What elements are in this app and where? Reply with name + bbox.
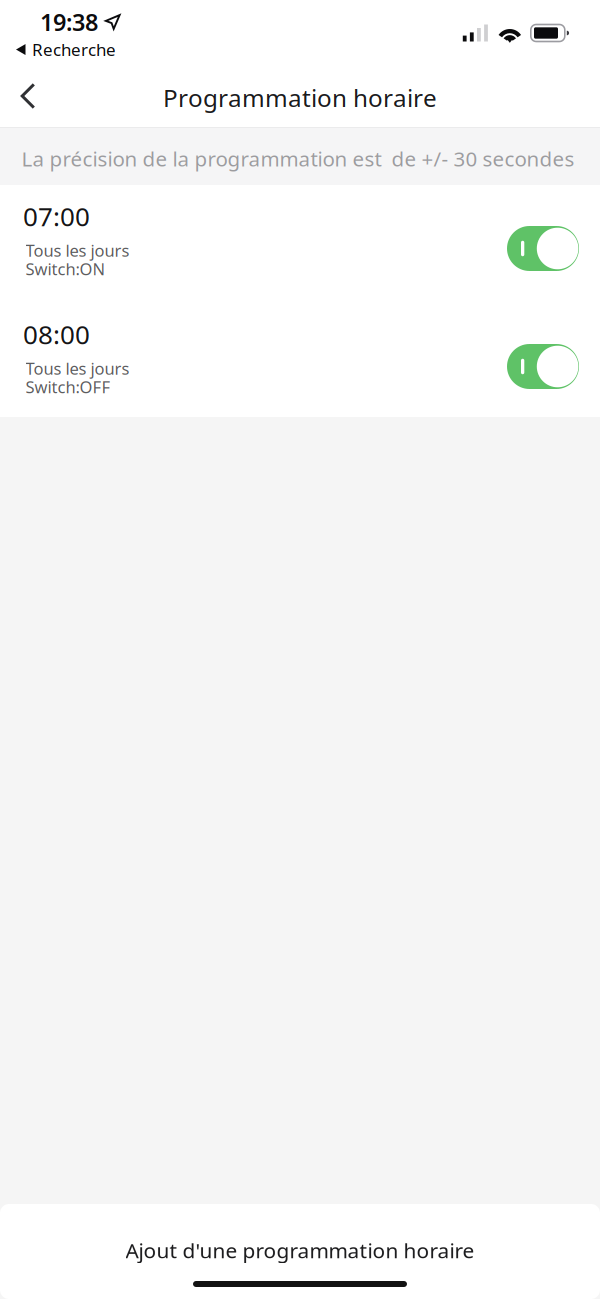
staticText: La précision de la programmation est de … — [21, 144, 574, 172]
staticText: Ajout d'une programmation horaire — [125, 1236, 474, 1264]
button[interactable]: 08:00 — [0, 303, 600, 417]
staticText: 07:00 — [23, 198, 90, 234]
staticText: 19:38 — [40, 6, 98, 38]
button[interactable]: Back — [0, 72, 56, 120]
staticText: Tous les jours — [25, 239, 129, 261]
staticText: Tous les jours — [25, 357, 129, 379]
staticText: Switch:OFF — [25, 375, 110, 398]
button[interactable]: Ajout d'une programmation horaire — [0, 1204, 600, 1299]
staticText: Recherche — [32, 38, 116, 61]
staticText: 08:00 — [23, 316, 90, 352]
button[interactable]: 07:00 — [0, 185, 600, 303]
staticText: Switch:ON — [25, 257, 105, 280]
staticText: Programmation horaire — [163, 81, 437, 114]
